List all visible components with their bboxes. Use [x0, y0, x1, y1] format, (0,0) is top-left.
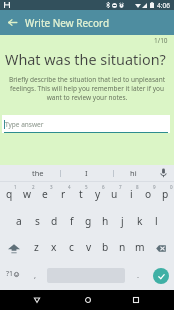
button[interactable]: Voice input [153, 165, 174, 181]
button[interactable]: x [45, 235, 63, 261]
button[interactable]: 2 [18, 182, 36, 208]
staticText: h [102, 214, 109, 228]
staticText: 6 [102, 184, 105, 190]
button[interactable]: Home [74, 290, 102, 310]
staticText: 9 [153, 184, 156, 190]
staticText: 4 [68, 184, 71, 190]
button[interactable]: 9 [140, 182, 157, 208]
button[interactable]: Enter [153, 268, 169, 284]
button[interactable]: Space [42, 261, 131, 290]
staticText: the [32, 168, 44, 178]
button[interactable]: , [28, 261, 42, 290]
staticText: v [86, 240, 92, 254]
button[interactable]: hi [113, 165, 153, 181]
button[interactable]: v [80, 235, 97, 261]
staticText: 2 [32, 184, 35, 190]
staticText: b [102, 240, 109, 254]
staticText: m [135, 240, 145, 254]
staticText: 8 [136, 184, 139, 190]
button[interactable]: 8 [123, 182, 140, 208]
staticText: q [6, 187, 13, 201]
staticText: What was the situation? [5, 50, 166, 70]
button[interactable]: c [63, 235, 80, 261]
staticText: u [111, 187, 118, 201]
staticText: hi [130, 168, 137, 178]
staticText: j [121, 214, 124, 228]
staticText: w [23, 187, 32, 201]
button[interactable]: Shift [0, 235, 27, 261]
button[interactable]: g [80, 208, 97, 235]
staticText: g [85, 214, 92, 228]
staticText: I [85, 168, 88, 178]
staticText: 0 [170, 184, 173, 190]
staticText: o [145, 187, 152, 201]
button[interactable]: 6 [89, 182, 106, 208]
button[interactable]: s [28, 208, 46, 235]
staticText: 7 [119, 184, 122, 190]
staticText: . [137, 270, 140, 280]
staticText: r [61, 187, 66, 201]
staticText: i [130, 187, 133, 201]
staticText: z [34, 240, 39, 254]
button[interactable]: Symbols [0, 261, 28, 290]
button[interactable]: f [63, 208, 80, 235]
staticText: 4:06 [157, 1, 170, 10]
button[interactable]: 0 [157, 182, 174, 208]
button[interactable]: I [60, 165, 113, 181]
button[interactable]: j [114, 208, 131, 235]
button[interactable]: 5 [72, 182, 89, 208]
button[interactable]: k [131, 208, 148, 235]
button[interactable]: the [0, 165, 60, 181]
staticText: l [155, 214, 158, 228]
staticText: e [42, 187, 48, 201]
staticText: 3 [50, 184, 53, 190]
button[interactable]: z [27, 235, 45, 261]
staticText: k [137, 214, 143, 228]
staticText: , [34, 270, 37, 280]
staticText: 1/10 [154, 36, 168, 45]
staticText: 1 [14, 184, 17, 190]
staticText: f [70, 214, 74, 228]
staticText: t [79, 187, 83, 201]
button[interactable]: Back [0, 10, 25, 35]
staticText: y [95, 187, 101, 201]
button[interactable]: l [148, 208, 165, 235]
staticText: c [69, 240, 74, 254]
button[interactable]: Back [23, 290, 51, 310]
button[interactable]: 7 [106, 182, 123, 208]
staticText: a [16, 214, 22, 228]
button[interactable]: . [131, 261, 146, 290]
button[interactable]: b [97, 235, 114, 261]
staticText: 5 [85, 184, 88, 190]
button[interactable]: m [131, 235, 148, 261]
button[interactable]: 1 [0, 182, 18, 208]
button[interactable]: 3 [36, 182, 54, 208]
button[interactable]: 4 [54, 182, 72, 208]
button[interactable]: Backspace [148, 235, 174, 261]
staticText: Briefly describe the situation that led … [6, 75, 168, 102]
staticText: n [119, 240, 126, 254]
button[interactable]: n [114, 235, 131, 261]
staticText: d [51, 214, 58, 228]
button[interactable]: Recents [122, 290, 150, 310]
staticText: Write New Record [25, 16, 110, 30]
button[interactable]: a [10, 208, 28, 235]
staticText: x [51, 240, 57, 254]
button[interactable]: Type answer [2, 115, 170, 133]
staticText: ?1 [6, 269, 14, 279]
staticText: s [35, 214, 40, 228]
button[interactable]: d [46, 208, 63, 235]
button[interactable]: h [97, 208, 114, 235]
staticText: Type answer [5, 120, 44, 129]
staticText: p [162, 187, 169, 201]
